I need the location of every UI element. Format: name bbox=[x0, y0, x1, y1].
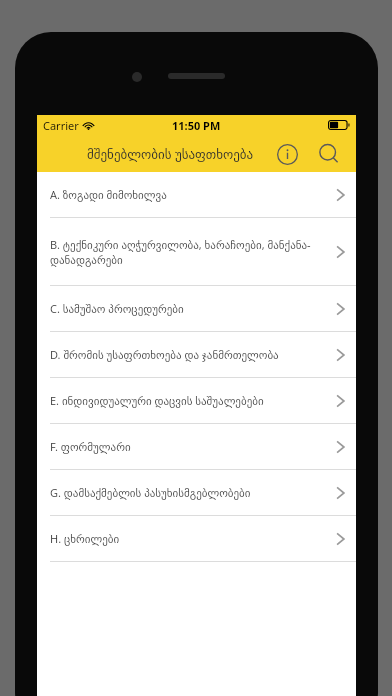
button[interactable]: E. ინდივიდუალური დაცვის საშუალებები bbox=[37, 378, 356, 423]
staticText: H. ცხრილები bbox=[50, 531, 120, 546]
staticText: G. დამსაქმებლის პასუხისმგებლობები bbox=[50, 485, 251, 500]
button[interactable]: Search bbox=[312, 137, 346, 171]
button[interactable]: D. შრომის უსაფრთხოება და ჯანმრთელობა bbox=[37, 332, 356, 377]
staticText: Carrier bbox=[43, 118, 79, 133]
staticText: C. სამუშაო პროცედურები bbox=[50, 301, 184, 316]
button[interactable]: B. ტექნიკური აღჭურვილობა, ხარაჩოები, მან… bbox=[37, 218, 356, 285]
button[interactable]: Info bbox=[270, 137, 304, 171]
staticText: მშენებლობის უსაფთხოება bbox=[87, 145, 254, 163]
button[interactable]: H. ცხრილები bbox=[37, 516, 356, 561]
staticText: E. ინდივიდუალური დაცვის საშუალებები bbox=[50, 393, 264, 408]
button[interactable]: F. ფორმულარი bbox=[37, 424, 356, 469]
staticText: A. ზოგადი მიმოხილვა bbox=[50, 187, 167, 202]
button[interactable]: G. დამსაქმებლის პასუხისმგებლობები bbox=[37, 470, 356, 515]
staticText: F. ფორმულარი bbox=[50, 439, 131, 454]
button[interactable]: A. ზოგადი მიმოხილვა bbox=[37, 172, 356, 217]
button[interactable]: C. სამუშაო პროცედურები bbox=[37, 286, 356, 331]
staticText: D. შრომის უსაფრთხოება და ჯანმრთელობა bbox=[50, 347, 279, 362]
staticText: B. ტექნიკური აღჭურვილობა, ხარაჩოები, მან… bbox=[50, 237, 311, 267]
staticText: 11:50 PM bbox=[172, 118, 221, 133]
